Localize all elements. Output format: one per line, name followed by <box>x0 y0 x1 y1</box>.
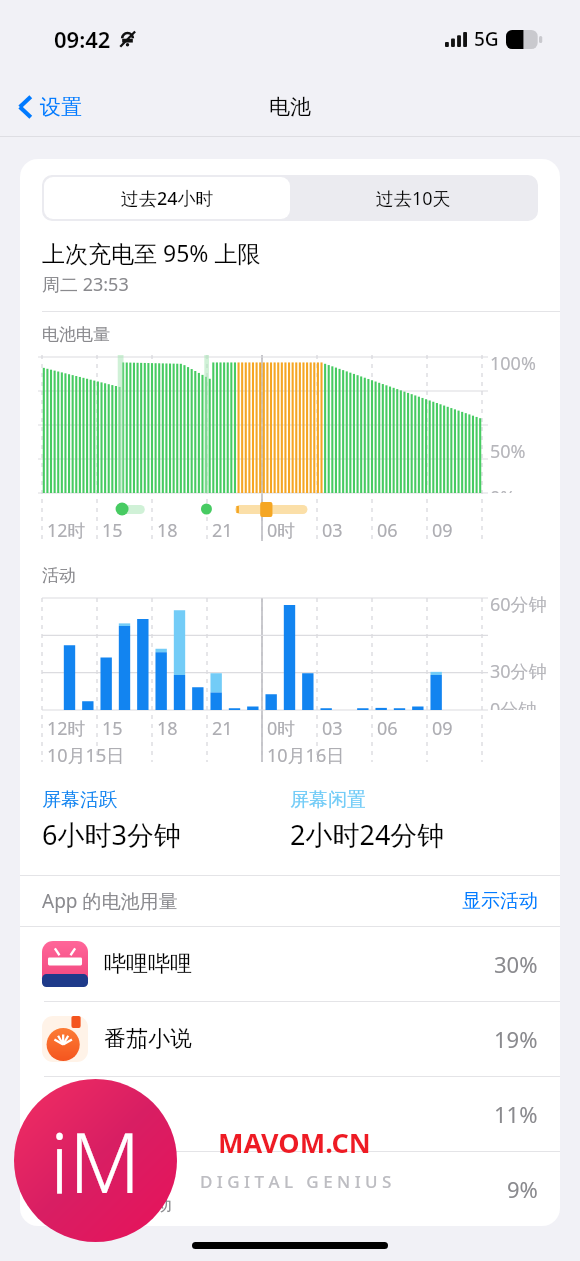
staticText: 2小时24分钟 <box>290 816 445 853</box>
staticText: 15 <box>102 518 123 543</box>
staticText: 30% <box>494 949 538 979</box>
staticText: 18 <box>157 716 178 741</box>
button[interactable]: 设置 <box>12 88 88 126</box>
staticText: 10月16日 <box>267 743 345 768</box>
button[interactable]: 显示活动 <box>462 889 538 913</box>
staticText: 09 <box>432 518 453 543</box>
staticText: 活动 <box>42 565 76 586</box>
button[interactable]: 过去24小时 <box>44 177 290 219</box>
staticText: 9% <box>507 1174 538 1204</box>
staticText: 19% <box>494 1024 538 1054</box>
staticText: 100% <box>490 351 536 376</box>
staticText: 03 <box>322 518 343 543</box>
staticText: 18 <box>157 518 178 543</box>
staticText: 15 <box>102 716 123 741</box>
staticText: 0时 <box>267 716 296 741</box>
button[interactable]: 哔哩哔哩 <box>20 927 560 1001</box>
staticText: 09 <box>432 716 453 741</box>
staticText: 电池电量 <box>42 324 110 345</box>
staticText: 21 <box>212 518 233 543</box>
staticText: 06 <box>377 716 398 741</box>
staticText: 音乐 <box>104 1164 148 1192</box>
staticText: 21 <box>212 716 233 741</box>
button[interactable]: 番茄小说 <box>20 1002 560 1076</box>
staticText: 10月15日 <box>47 743 125 768</box>
staticText: 6小时3分钟 <box>42 816 181 853</box>
staticText: 09:42 <box>54 24 111 54</box>
staticText: 50% <box>490 439 526 464</box>
staticText: 12时 <box>47 716 86 741</box>
staticText: 屏幕活跃 <box>42 788 118 812</box>
staticText: 周二 23:53 <box>42 272 129 297</box>
button[interactable]: 11% <box>20 1077 560 1151</box>
staticText: 显示活动 <box>462 889 538 913</box>
staticText: 过去24小时 <box>121 186 214 211</box>
staticText: D I G I T A L G E N I U S <box>200 1170 392 1193</box>
staticText: 0时 <box>267 518 296 543</box>
staticText: 过去10天 <box>376 186 451 211</box>
staticText: 06 <box>377 518 398 543</box>
staticText: 上次充电至 95% 上限 <box>42 237 261 268</box>
staticText: 03 <box>322 716 343 741</box>
staticText: 电池 <box>269 94 311 120</box>
staticText: 12时 <box>47 518 86 543</box>
staticText: 屏幕闲置 <box>290 788 366 812</box>
button[interactable]: 音乐 <box>20 1152 560 1226</box>
staticText: 30分钟 <box>490 659 547 684</box>
staticText: iM <box>50 1105 141 1217</box>
staticText: 0% <box>490 485 516 493</box>
staticText: 设置 <box>40 94 82 120</box>
staticText: 后台活动 <box>104 1194 172 1215</box>
staticText: MAVOM.CN <box>218 1124 371 1161</box>
staticText: 11% <box>494 1099 538 1129</box>
staticText: 哔哩哔哩 <box>104 950 192 978</box>
staticText: 5G <box>474 26 499 52</box>
staticText: 0分钟 <box>490 697 537 710</box>
staticText: App 的电池用量 <box>42 888 178 914</box>
staticText: 60分钟 <box>490 592 547 617</box>
button[interactable]: 过去10天 <box>290 177 536 219</box>
staticText: 番茄小说 <box>104 1025 192 1053</box>
